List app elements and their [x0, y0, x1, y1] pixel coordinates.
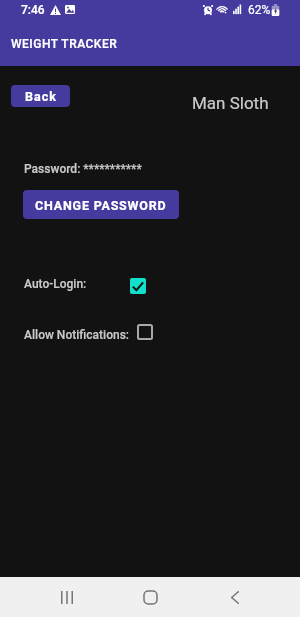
button[interactable]: CHANGE PASSWORD	[23, 190, 179, 219]
button[interactable]: Recent apps	[39, 583, 95, 611]
staticText: WEIGHT TRACKER	[11, 37, 118, 51]
button[interactable]: Back	[207, 583, 263, 611]
staticText: CHANGE PASSWORD	[35, 198, 167, 213]
button[interactable]: Allow Notifications:	[24, 324, 153, 346]
button[interactable]: Back	[11, 85, 70, 107]
button[interactable]: Auto-Login checkbox, checked	[130, 278, 146, 294]
button[interactable]: Home	[122, 583, 178, 611]
staticText: Man Sloth	[192, 93, 269, 113]
staticText: Back	[25, 89, 57, 104]
button[interactable]: Auto-Login:	[24, 273, 146, 295]
staticText: Auto-Login:	[24, 277, 87, 291]
staticText: 62%	[248, 3, 271, 17]
staticText: 7:46	[21, 3, 45, 17]
button[interactable]: Allow Notifications checkbox, unchecked	[137, 324, 153, 340]
staticText: Password: ***********	[24, 162, 142, 176]
staticText: Allow Notifications:	[24, 328, 130, 342]
